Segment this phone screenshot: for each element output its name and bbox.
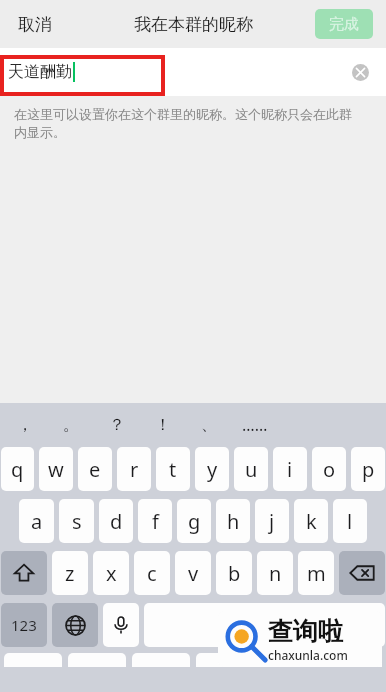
button[interactable]: v: [175, 551, 211, 595]
button[interactable]: f: [138, 499, 172, 543]
button[interactable]: o: [312, 447, 346, 491]
button[interactable]: Switch keyboard language: [52, 603, 98, 647]
button[interactable]: 、: [186, 403, 232, 447]
button[interactable]: p: [351, 447, 385, 491]
staticText: r: [130, 456, 139, 483]
button[interactable]: ，: [2, 403, 48, 447]
button[interactable]: ！: [140, 403, 186, 447]
staticText: c: [147, 560, 157, 587]
button[interactable]: 完成: [315, 9, 373, 39]
button[interactable]: ……: [232, 403, 278, 447]
button[interactable]: i: [273, 447, 307, 491]
staticText: d: [110, 508, 123, 535]
staticText: 在这里可以设置你在这个群里的昵称。这个昵称只会在此群内显示。: [14, 106, 360, 141]
button[interactable]: Backspace: [339, 551, 385, 595]
staticText: t: [169, 456, 177, 483]
staticText: 取消: [18, 14, 52, 35]
staticText: 、: [201, 415, 217, 435]
staticText: ……: [242, 414, 268, 436]
button[interactable]: Clear text: [348, 60, 372, 84]
staticText: 空格: [250, 616, 280, 635]
button[interactable]: y: [195, 447, 229, 491]
button[interactable]: u: [234, 447, 268, 491]
button[interactable]: l: [333, 499, 367, 543]
button[interactable]: h: [216, 499, 250, 543]
staticText: ！: [155, 415, 171, 435]
staticText: m: [307, 560, 326, 587]
staticText: 天道酬勤: [8, 62, 72, 82]
staticText: a: [31, 508, 43, 535]
staticText: v: [188, 560, 199, 587]
staticText: b: [228, 560, 241, 587]
button[interactable]: c: [134, 551, 170, 595]
button[interactable]: 天道酬勤: [0, 48, 386, 96]
staticText: 我在本群的昵称: [134, 14, 253, 35]
staticText: i: [287, 456, 293, 483]
button[interactable]: Shift: [1, 551, 47, 595]
staticText: 完成: [329, 15, 359, 34]
staticText: p: [362, 456, 375, 483]
button[interactable]: x: [93, 551, 129, 595]
staticText: chaxunla.com: [268, 647, 348, 663]
staticText: ？: [109, 415, 125, 435]
staticText: h: [227, 508, 240, 535]
staticText: k: [306, 508, 317, 535]
staticText: f: [152, 508, 159, 535]
staticText: s: [72, 508, 82, 535]
button[interactable]: g: [177, 499, 211, 543]
button[interactable]: 空格: [144, 603, 385, 647]
staticText: g: [188, 508, 201, 535]
staticText: y: [207, 456, 218, 483]
button[interactable]: e: [78, 447, 112, 491]
button[interactable]: n: [257, 551, 293, 595]
staticText: o: [323, 456, 336, 483]
button[interactable]: ？: [94, 403, 140, 447]
button[interactable]: j: [255, 499, 289, 543]
button[interactable]: z: [52, 551, 88, 595]
button[interactable]: d: [99, 499, 133, 543]
button[interactable]: w: [39, 447, 73, 491]
staticText: 查询啦: [268, 616, 343, 647]
button[interactable]: s: [59, 499, 94, 543]
staticText: 。: [63, 415, 79, 435]
staticText: x: [106, 560, 117, 587]
button[interactable]: t: [156, 447, 190, 491]
button[interactable]: b: [216, 551, 252, 595]
button[interactable]: k: [294, 499, 328, 543]
button[interactable]: 。: [48, 403, 94, 447]
staticText: ，: [17, 415, 33, 435]
button[interactable]: 取消: [10, 8, 60, 41]
button[interactable]: r: [117, 447, 151, 491]
staticText: j: [269, 508, 275, 535]
staticText: n: [269, 560, 282, 587]
button[interactable]: 123: [1, 603, 47, 647]
button[interactable]: Voice input: [103, 603, 139, 647]
staticText: l: [347, 508, 353, 535]
button[interactable]: m: [298, 551, 334, 595]
button[interactable]: q: [1, 447, 34, 491]
staticText: w: [48, 456, 64, 483]
staticText: 123: [11, 615, 37, 635]
staticText: u: [245, 456, 258, 483]
button[interactable]: a: [19, 499, 54, 543]
staticText: z: [65, 560, 75, 587]
staticText: q: [11, 456, 24, 483]
staticText: e: [89, 456, 101, 483]
